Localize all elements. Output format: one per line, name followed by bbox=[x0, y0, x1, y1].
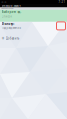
staticText: Фильтр: bbox=[1, 22, 14, 26]
staticText: + bbox=[1, 35, 4, 42]
button[interactable]: + bbox=[0, 30, 67, 42]
staticText: Подразделения bbox=[1, 26, 20, 30]
staticText: Фильтры заявок bbox=[1, 4, 20, 7]
staticText: ▫ ▫ bbox=[1, 0, 6, 3]
staticText: Список bbox=[1, 15, 11, 18]
staticText: Выберите ед. bbox=[1, 10, 21, 14]
staticText: 7:21 bbox=[58, 0, 65, 4]
staticText: Добавить bbox=[6, 37, 19, 40]
staticText: Выберите подр. bbox=[1, 8, 13, 9]
button[interactable]: Сбросить фильтр bbox=[56, 22, 65, 30]
